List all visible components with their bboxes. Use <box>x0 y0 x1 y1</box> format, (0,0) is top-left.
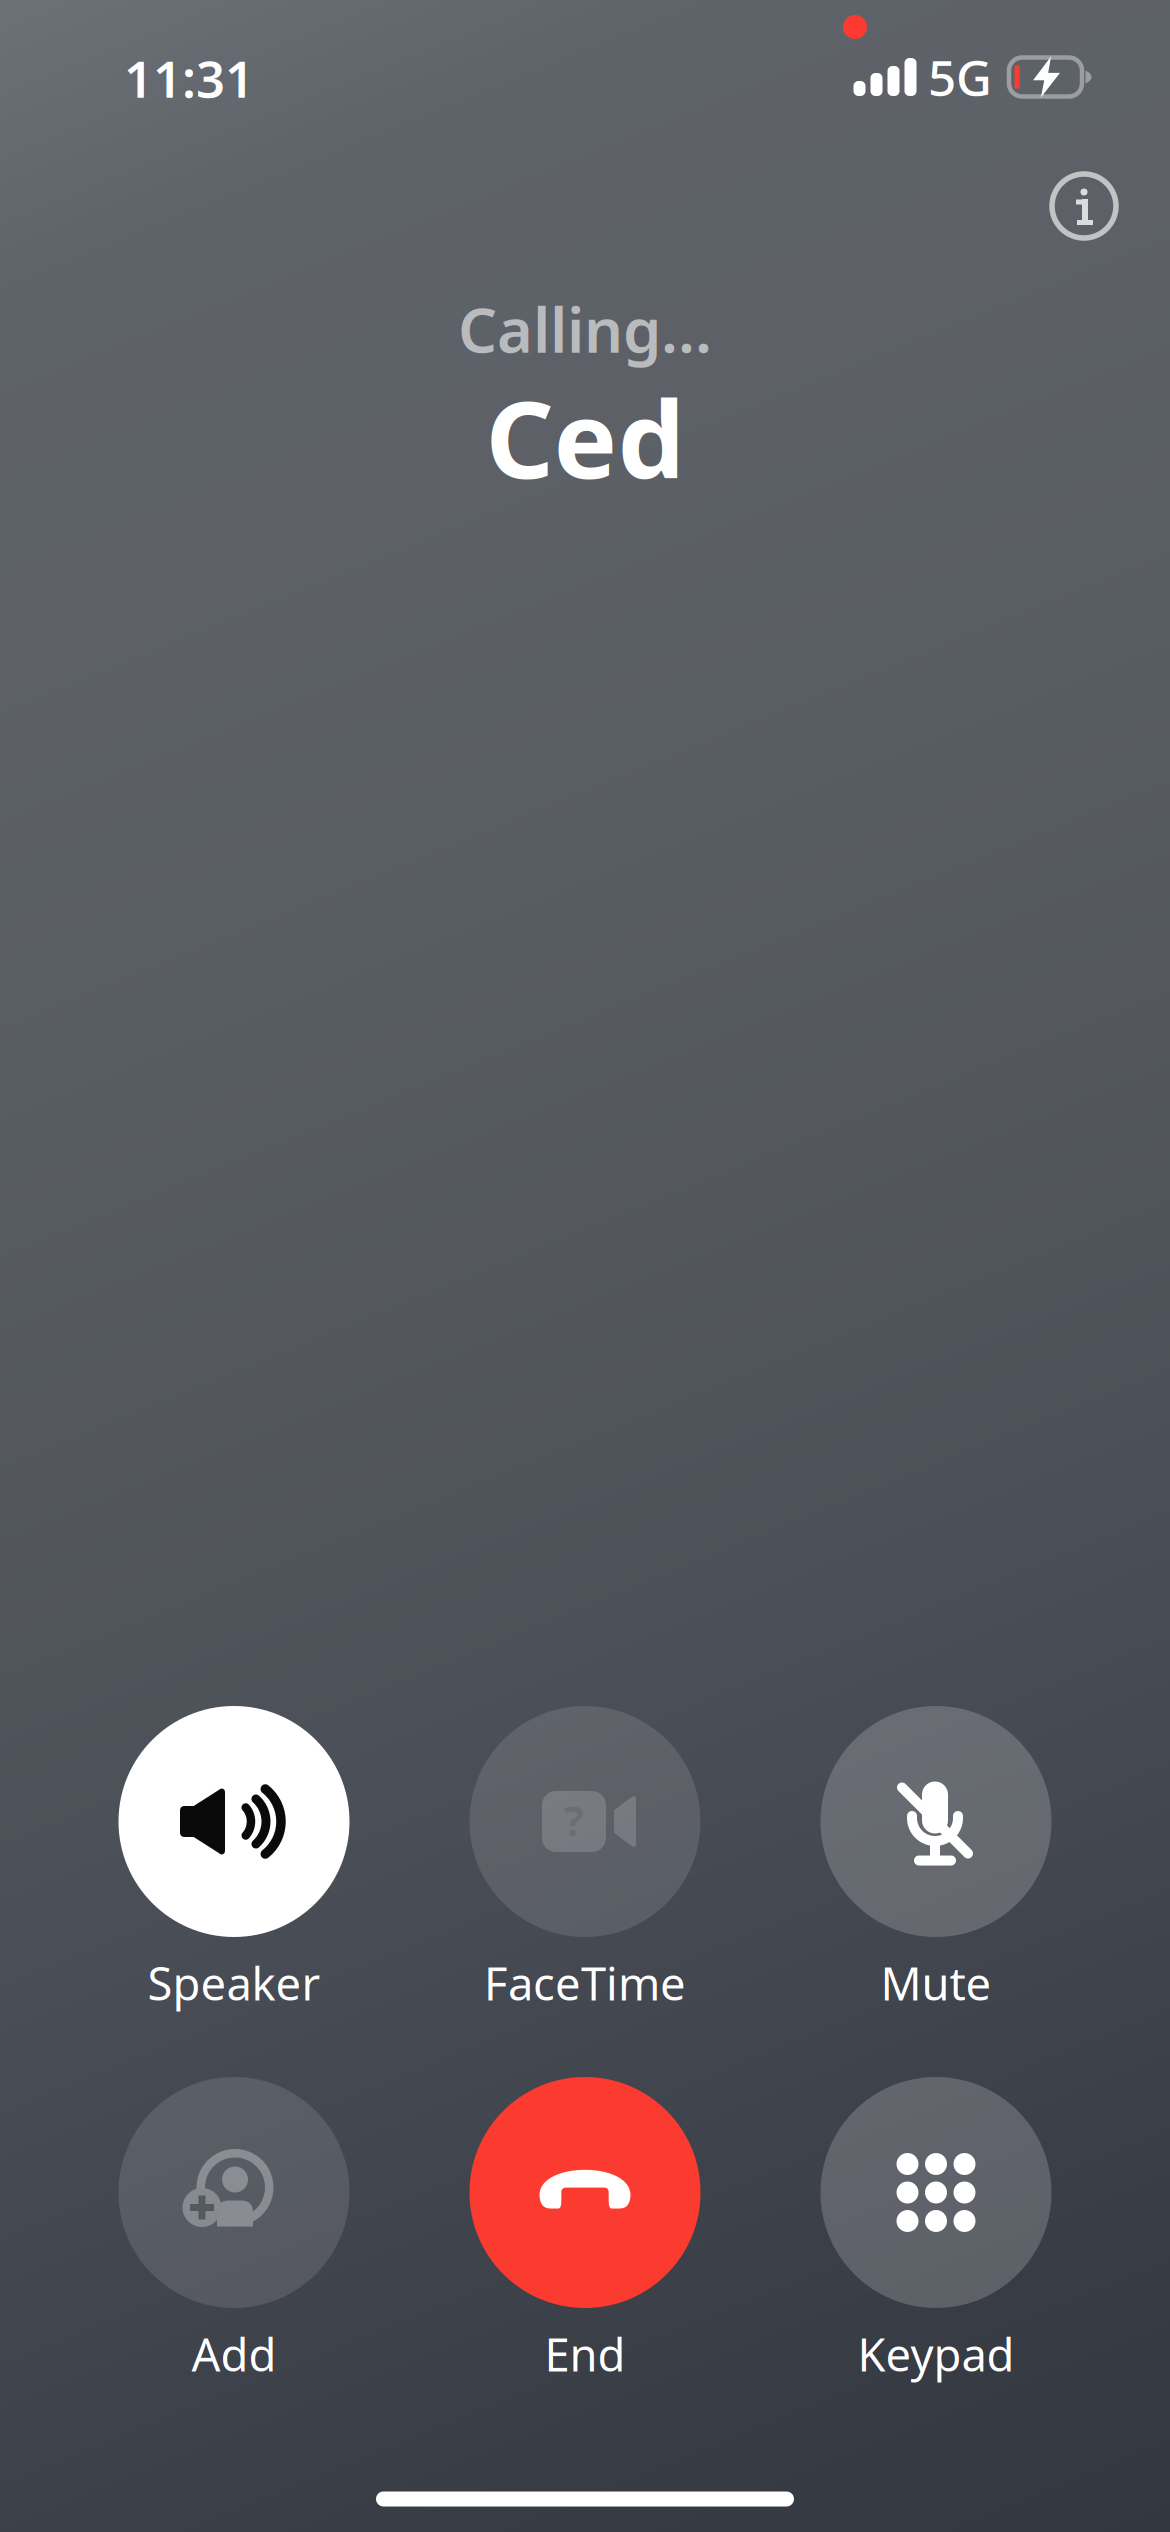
button[interactable]: Add <box>69 2077 399 2377</box>
staticText: Mute <box>880 1953 991 2013</box>
button[interactable]: Speaker <box>69 1706 399 2006</box>
button[interactable]: Mute <box>771 1706 1101 2006</box>
button[interactable]: Call info <box>1024 146 1144 266</box>
staticText: Keypad <box>857 2324 1014 2384</box>
staticText: Add <box>191 2324 276 2384</box>
staticText: FaceTime <box>484 1953 686 2013</box>
staticText: Calling... <box>458 288 712 370</box>
button[interactable]: ? <box>420 1706 750 2006</box>
staticText: Ced <box>485 366 684 508</box>
button[interactable]: Keypad <box>771 2077 1101 2377</box>
staticText: ? <box>564 1793 584 1848</box>
staticText: Speaker <box>147 1953 320 2013</box>
staticText: 5G <box>928 44 992 110</box>
button[interactable]: End <box>420 2077 750 2377</box>
staticText: 11:31 <box>124 44 254 112</box>
staticText: End <box>544 2324 625 2384</box>
